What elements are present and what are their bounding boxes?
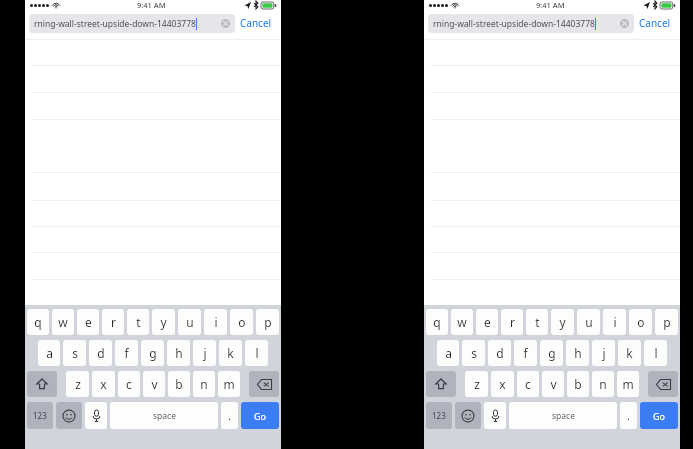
staticText: p	[264, 314, 272, 330]
button[interactable]: Emoji	[56, 402, 82, 429]
button[interactable]: m	[218, 371, 240, 397]
staticText: l	[255, 345, 259, 361]
button[interactable]: f	[115, 340, 138, 366]
button[interactable]: l	[644, 340, 667, 366]
button[interactable]: t	[526, 309, 548, 335]
button[interactable]: a	[437, 340, 459, 366]
button[interactable]: Go	[640, 402, 678, 429]
button[interactable]: g	[141, 340, 164, 366]
button[interactable]: v	[143, 371, 165, 397]
staticText: t	[535, 314, 540, 330]
button[interactable]: x	[92, 371, 115, 397]
staticText: b	[574, 376, 582, 392]
button[interactable]: Cancel	[235, 13, 277, 33]
button[interactable]: w	[52, 309, 74, 335]
button[interactable]: Shift	[426, 371, 456, 397]
button[interactable]: Delete	[648, 371, 678, 397]
button[interactable]: rning-wall-street-upside-down-14403778	[428, 14, 634, 33]
button[interactable]: w	[451, 309, 473, 335]
staticText: .	[627, 408, 630, 423]
staticText: f	[124, 345, 129, 361]
button[interactable]: Dictation	[484, 402, 506, 429]
staticText: o	[238, 314, 246, 330]
button[interactable]: Shift	[27, 371, 57, 397]
button[interactable]: z	[465, 371, 488, 397]
staticText: 123	[33, 410, 47, 421]
button[interactable]: b	[168, 371, 190, 397]
button[interactable]: .	[221, 402, 238, 429]
staticText: n	[200, 376, 208, 392]
button[interactable]: r	[102, 309, 124, 335]
staticText: 9:41 AM	[137, 0, 166, 10]
staticText: o	[637, 314, 645, 330]
button[interactable]: e	[476, 309, 498, 335]
button[interactable]: .	[620, 402, 637, 429]
button[interactable]: f	[514, 340, 537, 366]
button[interactable]: z	[66, 371, 89, 397]
button[interactable]: m	[617, 371, 639, 397]
button[interactable]: p	[655, 309, 678, 335]
staticText: j	[602, 345, 606, 361]
button[interactable]: s	[63, 340, 86, 366]
button[interactable]: y	[551, 309, 574, 335]
button[interactable]: i	[603, 309, 626, 335]
button[interactable]: Cancel	[634, 13, 676, 33]
staticText: r	[510, 314, 515, 330]
button[interactable]: 123	[27, 402, 53, 429]
button[interactable]: space	[110, 402, 218, 429]
button[interactable]: q	[27, 309, 49, 335]
staticText: m	[622, 376, 634, 392]
button[interactable]: b	[567, 371, 589, 397]
staticText: Go	[653, 410, 665, 422]
button[interactable]: s	[462, 340, 485, 366]
button[interactable]: j	[193, 340, 216, 366]
staticText: k	[626, 345, 633, 361]
staticText: m	[223, 376, 235, 392]
button[interactable]: r	[501, 309, 523, 335]
button[interactable]: g	[540, 340, 563, 366]
button[interactable]: Clear text	[221, 19, 230, 28]
staticText: x	[100, 376, 107, 392]
button[interactable]: q	[426, 309, 448, 335]
button[interactable]: e	[77, 309, 99, 335]
button[interactable]: Clear text	[620, 19, 629, 28]
button[interactable]: rning-wall-street-upside-down-14403778	[29, 14, 235, 33]
staticText: k	[227, 345, 234, 361]
button[interactable]: o	[230, 309, 253, 335]
button[interactable]: Delete	[249, 371, 279, 397]
button[interactable]: t	[127, 309, 149, 335]
button[interactable]: c	[118, 371, 140, 397]
staticText: n	[599, 376, 607, 392]
button[interactable]: d	[488, 340, 511, 366]
button[interactable]: p	[256, 309, 279, 335]
button[interactable]: c	[517, 371, 539, 397]
button[interactable]: i	[204, 309, 227, 335]
button[interactable]: Emoji	[455, 402, 481, 429]
button[interactable]: l	[245, 340, 268, 366]
button[interactable]: n	[592, 371, 614, 397]
button[interactable]: Go	[241, 402, 279, 429]
staticText: Cancel	[240, 16, 272, 30]
button[interactable]: 123	[426, 402, 452, 429]
button[interactable]: x	[491, 371, 514, 397]
button[interactable]: h	[167, 340, 190, 366]
button[interactable]: j	[592, 340, 615, 366]
button[interactable]: Dictation	[85, 402, 107, 429]
button[interactable]: d	[89, 340, 112, 366]
button[interactable]: u	[178, 309, 201, 335]
staticText: g	[149, 345, 157, 361]
button[interactable]: o	[629, 309, 652, 335]
button[interactable]: k	[219, 340, 242, 366]
button[interactable]: v	[542, 371, 564, 397]
button[interactable]: u	[577, 309, 600, 335]
button[interactable]: n	[193, 371, 215, 397]
staticText: z	[75, 376, 81, 392]
staticText: u	[585, 314, 593, 330]
staticText: Go	[254, 410, 266, 422]
staticText: j	[203, 345, 207, 361]
button[interactable]: k	[618, 340, 641, 366]
button[interactable]: a	[38, 340, 60, 366]
button[interactable]: space	[509, 402, 617, 429]
button[interactable]: y	[152, 309, 175, 335]
button[interactable]: h	[566, 340, 589, 366]
